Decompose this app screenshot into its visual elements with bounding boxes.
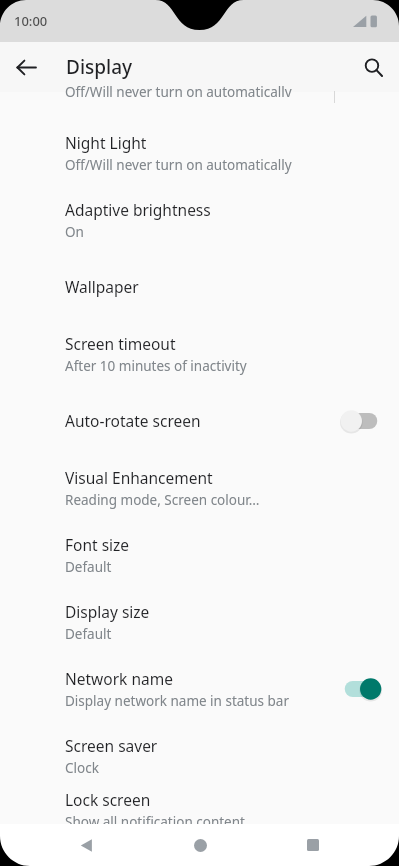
- button[interactable]: Home: [173, 824, 227, 866]
- button[interactable]: Visual Enhancement: [0, 454, 399, 521]
- staticText: Auto-rotate screen: [65, 410, 201, 431]
- button[interactable]: Night Light: [0, 119, 399, 186]
- staticText: Show all notification content: [65, 813, 245, 824]
- staticText: Visual Enhancement: [65, 467, 213, 488]
- staticText: Reading mode, Screen colour…: [65, 491, 260, 509]
- staticText: Night Light: [65, 132, 147, 153]
- button[interactable]: Adaptive brightness: [0, 186, 399, 253]
- staticText: After 10 minutes of inactivity: [65, 357, 247, 375]
- button[interactable]: Back: [59, 824, 113, 866]
- button[interactable]: Screen timeout: [0, 320, 399, 387]
- button[interactable]: Network name: [0, 655, 399, 722]
- staticText: Screen timeout: [65, 333, 176, 354]
- button[interactable]: Font size: [0, 521, 399, 588]
- staticText: Default: [65, 558, 112, 576]
- button[interactable]: Back: [6, 47, 46, 87]
- button[interactable]: Lock screen: [0, 789, 399, 824]
- staticText: Display: [66, 54, 133, 80]
- staticText: Display network name in status bar: [65, 692, 290, 710]
- staticText: On: [65, 223, 84, 241]
- staticText: 10:00: [14, 12, 48, 30]
- staticText: Font size: [65, 534, 130, 555]
- button[interactable]: Wallpaper: [0, 253, 399, 320]
- staticText: Network name: [65, 668, 173, 689]
- button[interactable]: Recent apps: [286, 824, 340, 866]
- staticText: Clock: [65, 759, 99, 777]
- staticText: Adaptive brightness: [65, 199, 211, 220]
- staticText: Off/Will never turn on automatically: [65, 83, 292, 97]
- staticText: Wallpaper: [65, 276, 139, 297]
- staticText: Default: [65, 625, 112, 643]
- button[interactable]: Screen saver: [0, 722, 399, 789]
- button[interactable]: Search: [353, 47, 393, 87]
- staticText: Screen saver: [65, 735, 158, 756]
- staticText: Off/Will never turn on automatically: [65, 156, 292, 174]
- staticText: Display size: [65, 601, 150, 622]
- button[interactable]: Display size: [0, 588, 399, 655]
- button[interactable]: Auto-rotate screen: [0, 387, 399, 454]
- staticText: Lock screen: [65, 789, 151, 810]
